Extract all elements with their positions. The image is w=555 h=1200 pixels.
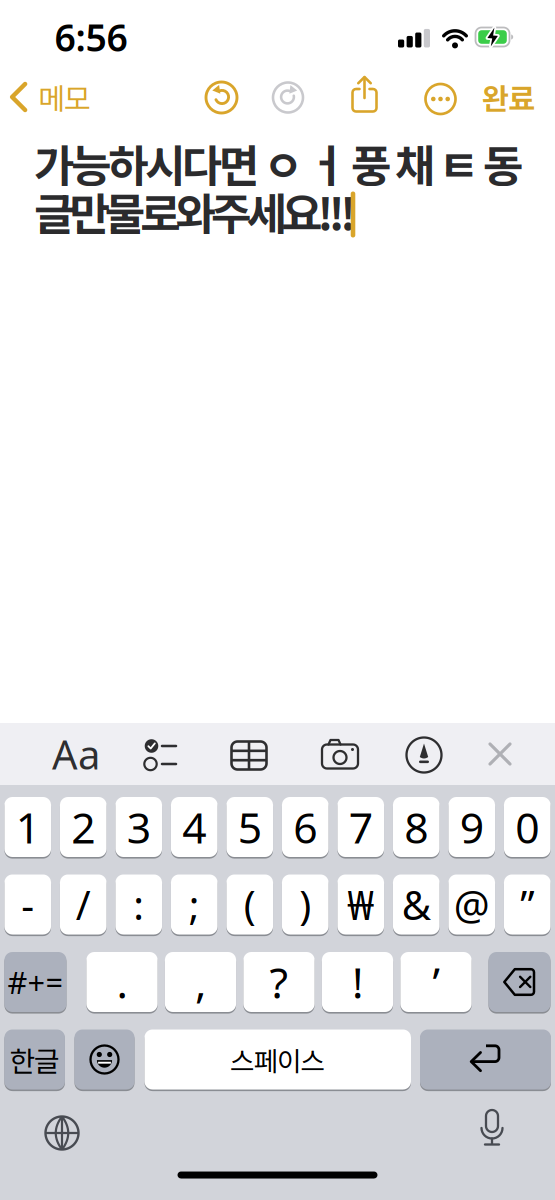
button[interactable]: 1 <box>4 797 51 857</box>
staticText: 5 <box>238 799 262 855</box>
button[interactable]: 2 <box>60 797 107 857</box>
button[interactable]: 8 <box>393 797 439 857</box>
button[interactable]: ) <box>282 874 328 934</box>
button[interactable]: 0 <box>504 797 550 857</box>
staticText: 6 <box>293 799 317 855</box>
staticText: ” <box>520 878 534 931</box>
staticText: 2 <box>71 799 95 855</box>
button[interactable]: 3 <box>115 797 162 857</box>
button[interactable]: Undo <box>199 75 243 119</box>
staticText: 4 <box>182 799 206 855</box>
staticText: 가능하시다면 ㅇ ㅓ 풍 채 ㅌ 동 <box>34 131 523 195</box>
staticText: - <box>21 878 34 931</box>
button[interactable]: 6 <box>282 797 328 857</box>
button[interactable]: More <box>418 77 462 121</box>
button[interactable]: 4 <box>171 797 217 857</box>
button[interactable]: @ <box>448 874 495 934</box>
staticText: 스페이스 <box>230 1040 325 1079</box>
staticText: ’ <box>432 954 439 1010</box>
button[interactable]: ; <box>171 874 217 934</box>
button[interactable]: Camera <box>316 733 364 777</box>
button[interactable]: Delete <box>488 952 550 1012</box>
button[interactable]: Dictation <box>470 1108 514 1152</box>
button[interactable]: : <box>115 874 162 934</box>
staticText: / <box>76 878 91 931</box>
staticText: 메모 <box>38 76 91 118</box>
button[interactable]: Table <box>227 733 271 777</box>
staticText: 8 <box>404 799 428 855</box>
button[interactable]: Markup <box>402 733 446 777</box>
button[interactable]: 메모 <box>9 76 91 118</box>
button[interactable]: Next keyboard <box>40 1111 84 1155</box>
button[interactable]: Dismiss keyboard bar <box>478 732 522 776</box>
staticText: ! <box>352 954 363 1010</box>
button[interactable]: Format <box>49 729 103 779</box>
button[interactable]: . <box>86 952 158 1012</box>
button[interactable]: ? <box>243 952 315 1012</box>
button[interactable]: 한글 <box>4 1029 65 1089</box>
staticText: , <box>195 954 206 1010</box>
staticText: . <box>116 954 127 1010</box>
staticText: 0 <box>515 799 539 855</box>
button[interactable]: / <box>60 874 107 934</box>
button[interactable]: #+= <box>4 952 66 1012</box>
button[interactable]: ” <box>504 874 550 934</box>
staticText: #+= <box>7 962 63 1002</box>
staticText: ? <box>269 954 288 1010</box>
button[interactable]: Redo <box>266 75 310 119</box>
button[interactable]: ’ <box>400 952 472 1012</box>
button[interactable]: ! <box>322 952 393 1012</box>
staticText: 6:56 <box>54 12 127 62</box>
button[interactable]: 스페이스 <box>144 1029 411 1089</box>
staticText: 1 <box>16 799 40 855</box>
staticText: ( <box>244 878 256 931</box>
button[interactable]: 완료 <box>482 76 535 118</box>
button[interactable]: , <box>165 952 236 1012</box>
staticText: Aa <box>52 727 100 780</box>
button[interactable]: ( <box>226 874 273 934</box>
staticText: & <box>402 878 431 931</box>
staticText: 3 <box>127 799 151 855</box>
staticText: 글만물로와주세요!!! <box>34 179 356 243</box>
staticText: 한글 <box>9 1039 60 1080</box>
staticText: : <box>133 878 144 931</box>
staticText: @ <box>454 878 490 931</box>
button[interactable]: 7 <box>337 797 384 857</box>
button[interactable]: Checklist <box>138 733 182 777</box>
button[interactable]: ₩ <box>337 874 384 934</box>
button[interactable]: Emoji <box>74 1029 134 1089</box>
staticText: 9 <box>460 799 484 855</box>
staticText: ; <box>189 878 200 931</box>
button[interactable]: Return <box>420 1029 551 1089</box>
button[interactable]: 9 <box>448 797 495 857</box>
staticText: ₩ <box>347 878 374 931</box>
button[interactable]: & <box>393 874 439 934</box>
staticText: ) <box>299 878 311 931</box>
staticText: 완료 <box>482 76 535 118</box>
button[interactable]: 5 <box>226 797 273 857</box>
staticText: 7 <box>349 799 373 855</box>
button[interactable]: - <box>4 874 51 934</box>
button[interactable]: Share <box>342 73 386 117</box>
